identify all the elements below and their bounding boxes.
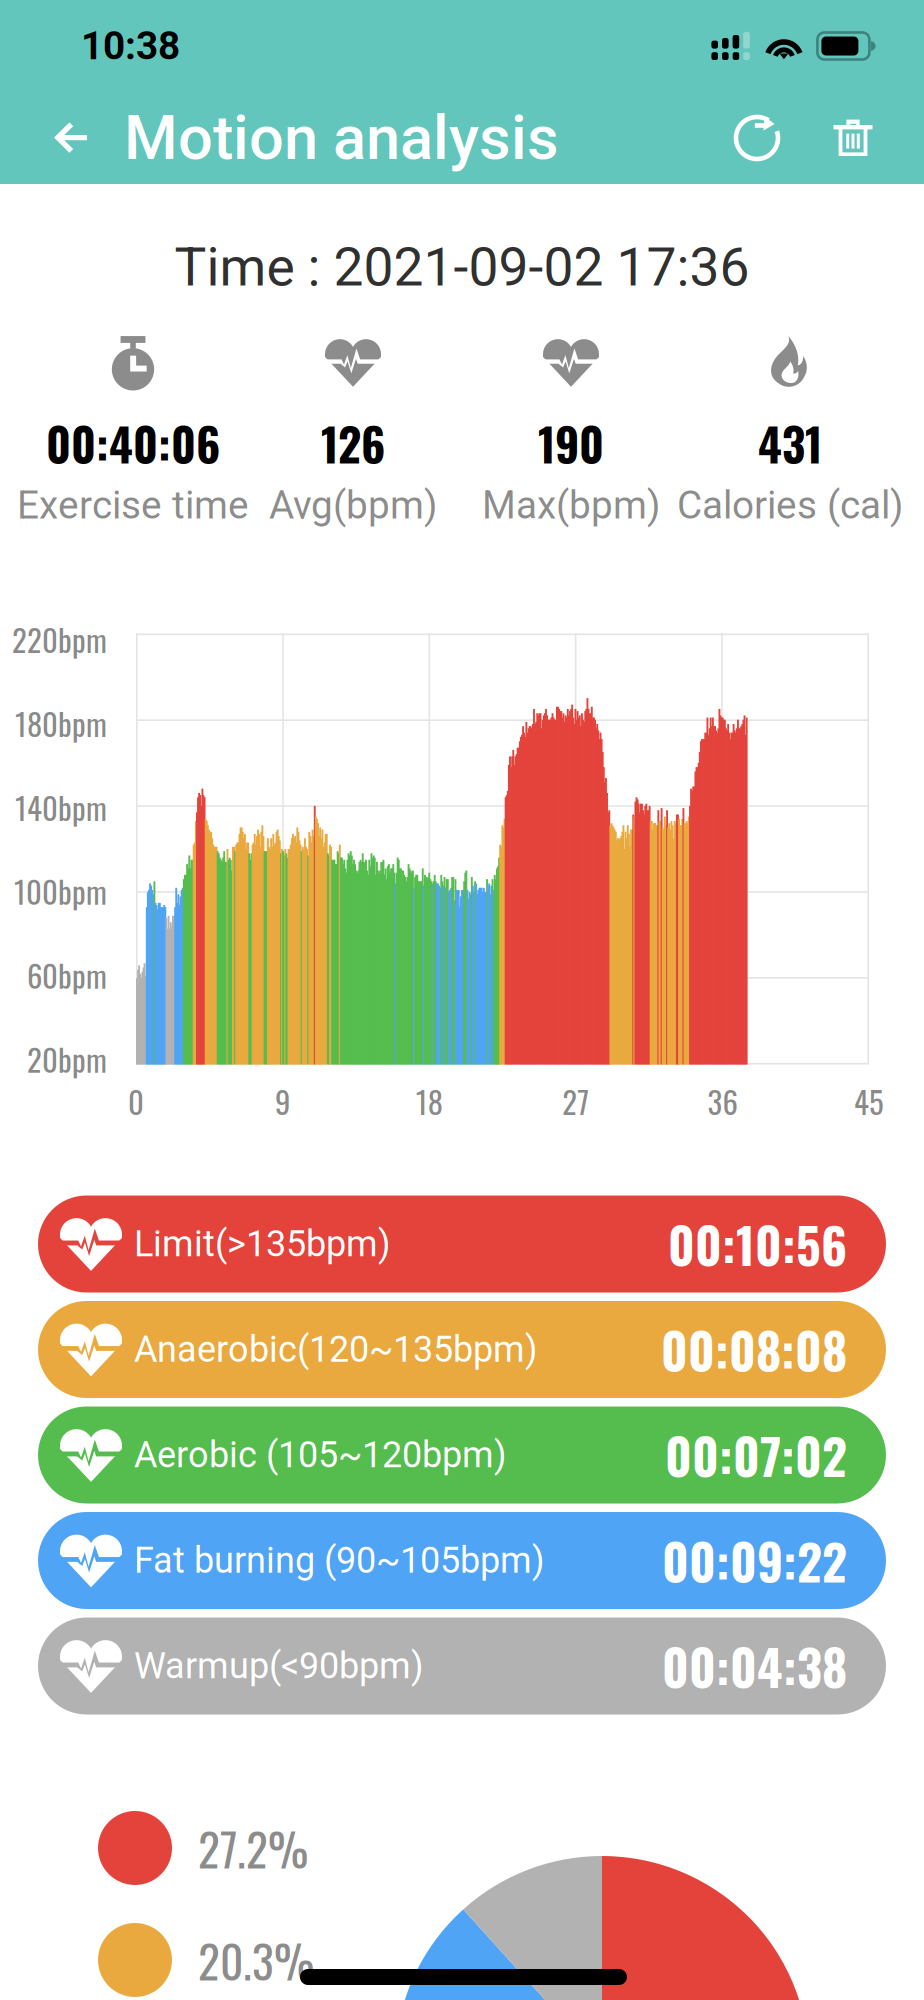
staticText: Time : 2021-09-02 17:36 [174,236,749,298]
staticText: 60bpm [27,952,107,997]
staticText: 140bpm [15,784,107,830]
staticText: 00:09:22 [662,1524,847,1596]
staticText: 100bpm [14,868,107,914]
staticText: 20.3% [198,1926,314,1994]
staticText: Calories (cal) [677,483,903,528]
staticText: 00:40:06 [46,409,220,477]
staticText: 20bpm [27,1036,107,1081]
staticText: 27.2% [198,1814,308,1882]
staticText: 190 [538,409,604,477]
staticText: Aerobic (105~120bpm) [134,1434,507,1476]
button[interactable]: Limit(>135bpm) [38,1195,886,1292]
staticText: Avg(bpm) [269,483,437,528]
staticText: 180bpm [15,700,107,746]
staticText: 9 [275,1078,290,1124]
button[interactable]: Aerobic (105~120bpm) [38,1406,886,1503]
staticText: 0 [128,1078,144,1124]
staticText: 27 [562,1078,589,1124]
staticText: 18 [416,1078,443,1124]
staticText: Exercise time [17,483,249,528]
staticText: 126 [321,409,385,477]
staticText: 431 [758,409,822,477]
staticText: 00:07:02 [665,1419,847,1491]
button[interactable]: Warmup(<90bpm) [38,1617,886,1714]
button[interactable]: Fat burning (90~105bpm) [38,1512,886,1609]
staticText: 00:10:56 [668,1208,847,1280]
staticText: 36 [707,1078,737,1124]
staticText: Max(bpm) [482,483,660,528]
staticText: Anaerobic(120~135bpm) [134,1328,538,1371]
button[interactable]: Back [34,101,108,175]
staticText: Limit(>135bpm) [134,1223,391,1265]
staticText: 00:04:38 [662,1630,847,1702]
staticText: 00:08:08 [661,1313,847,1385]
button[interactable]: Anaerobic(120~135bpm) [38,1301,886,1398]
staticText: Motion analysis [124,102,559,174]
staticText: 45 [854,1078,884,1124]
staticText: 220bpm [12,616,107,662]
staticText: Warmup(<90bpm) [134,1645,424,1687]
staticText: Fat burning (90~105bpm) [134,1539,545,1582]
button[interactable]: Refresh [720,101,794,175]
staticText: 10:38 [81,23,180,69]
button[interactable]: Delete [816,101,890,175]
